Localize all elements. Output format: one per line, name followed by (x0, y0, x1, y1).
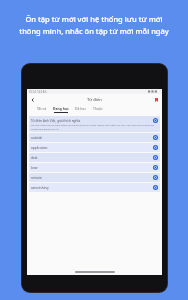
staticText: Từ điển (87, 97, 102, 103)
button[interactable]: Bookmark (152, 95, 161, 104)
button[interactable]: Play pronunciation (153, 165, 158, 170)
button[interactable]: remain (29, 173, 160, 182)
staticText: 10:14 14.0 K/s (29, 90, 47, 94)
button[interactable]: Back (28, 95, 37, 104)
button[interactable]: Đang học (50, 105, 72, 114)
button[interactable]: Play pronunciation (153, 145, 158, 150)
button[interactable]: Play pronunciation (153, 185, 158, 190)
button[interactable]: outside (29, 133, 160, 142)
button[interactable]: Từ điển Anh Việt, giải thích nghĩa (29, 116, 160, 132)
staticText: remain (31, 176, 153, 180)
staticText: astonishing (31, 186, 153, 190)
staticText: Đã học (75, 106, 87, 111)
button[interactable]: application (29, 143, 160, 152)
staticText: Tra cứu nhanh mọi từ vựng tiếng Anh thôn… (31, 124, 158, 130)
staticText: Ôn tập từ mới với hệ thống lưu từ mới (25, 14, 163, 24)
button[interactable]: Đã học (72, 105, 90, 114)
staticText: thông minh, nhắc ôn tập từ mới mỗi ngày (19, 26, 169, 36)
staticText: Thuộc (93, 106, 103, 111)
button[interactable]: deal (29, 153, 160, 162)
button[interactable]: Play pronunciation (153, 118, 158, 123)
button[interactable]: Thuộc (90, 105, 106, 114)
button[interactable]: astonishing (29, 183, 160, 192)
staticText: Tất cả (37, 106, 47, 111)
button[interactable]: bear (29, 163, 160, 172)
button[interactable]: Play pronunciation (153, 155, 158, 160)
staticText: Từ điển Anh Việt, giải thích nghĩa (31, 119, 153, 123)
staticText: outside (31, 136, 153, 140)
staticText: deal (31, 156, 153, 160)
staticText: Đang học (53, 106, 69, 111)
button[interactable]: Tất cả (34, 105, 50, 114)
staticText: bear (31, 166, 153, 170)
button[interactable]: Play pronunciation (153, 175, 158, 180)
staticText: application (31, 146, 153, 150)
button[interactable]: Play pronunciation (153, 135, 158, 140)
